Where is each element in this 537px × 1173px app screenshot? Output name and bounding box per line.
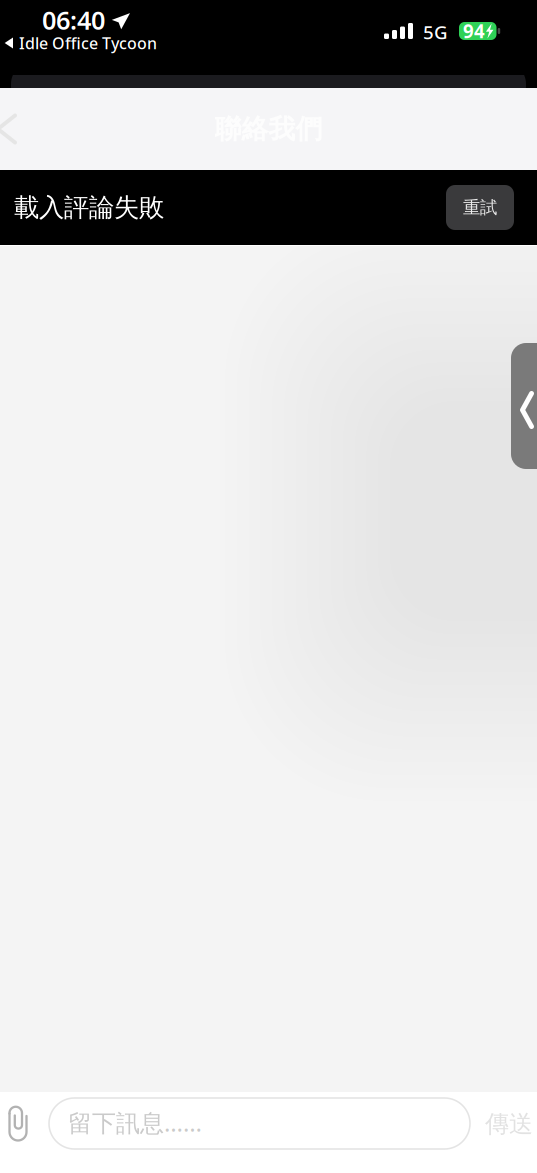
staticText: 5G <box>423 20 448 44</box>
staticText: 06:40 <box>42 3 105 37</box>
button[interactable]: Back <box>0 101 48 157</box>
staticText: Idle Office Tycoon <box>19 32 157 54</box>
staticText: 載入評論失敗 <box>14 192 164 223</box>
button[interactable]: 留下訊息…… <box>49 1098 470 1149</box>
button[interactable]: 重試 <box>446 185 514 230</box>
staticText: 留下訊息…… <box>68 1107 202 1138</box>
button[interactable]: Expand panel <box>511 343 537 469</box>
staticText: 重試 <box>463 197 497 218</box>
staticText: 聯絡我們 <box>214 113 322 145</box>
staticText: 94 <box>463 19 485 43</box>
button[interactable]: 傳送 <box>477 1102 537 1146</box>
staticText: 傳送 <box>485 1109 533 1139</box>
button[interactable]: Attach file <box>0 1099 37 1143</box>
